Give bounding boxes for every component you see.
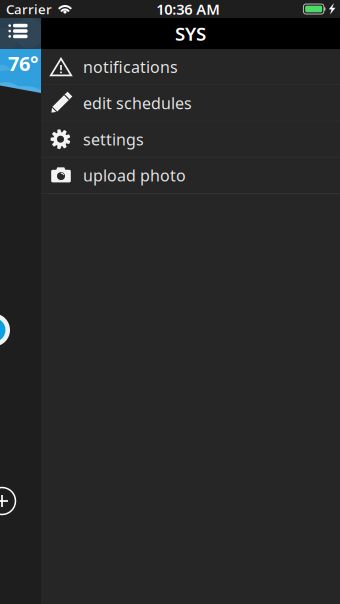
staticText: Carrier (6, 0, 52, 18)
button[interactable]: settings (41, 122, 340, 157)
staticText: 76° (8, 50, 38, 77)
button[interactable]: edit schedules (41, 85, 340, 121)
button[interactable]: Add (0, 487, 15, 514)
button[interactable]: upload photo (41, 158, 340, 193)
button[interactable]: Menu (1, 16, 35, 46)
button[interactable]: notifications (41, 49, 340, 84)
staticText: edit schedules (83, 92, 192, 114)
staticText: 10:36 AM (156, 0, 220, 19)
staticText: upload photo (83, 165, 186, 186)
staticText: SYS (175, 21, 206, 46)
staticText: notifications (83, 56, 178, 77)
staticText: settings (83, 129, 144, 150)
